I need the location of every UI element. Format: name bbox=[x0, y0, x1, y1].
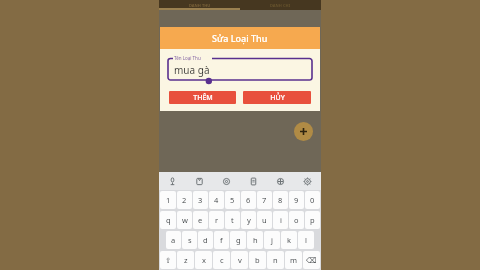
button[interactable]: q bbox=[160, 211, 176, 229]
staticText: 5 bbox=[230, 195, 235, 205]
button[interactable]: Keyboard tool 1 bbox=[159, 172, 186, 190]
button[interactable]: 6 bbox=[241, 191, 256, 209]
button[interactable]: Keyboard tool 2 bbox=[186, 172, 213, 190]
button[interactable]: j bbox=[264, 231, 280, 249]
staticText: Tên Loại Thu bbox=[174, 55, 201, 61]
button[interactable]: b bbox=[249, 251, 266, 269]
staticText: n bbox=[273, 255, 278, 265]
staticText: h bbox=[253, 235, 258, 245]
button[interactable]: DANH THU bbox=[159, 0, 240, 10]
button[interactable]: x bbox=[195, 251, 212, 269]
button[interactable]: 2 bbox=[177, 191, 192, 209]
button[interactable]: h bbox=[247, 231, 263, 249]
staticText: ⇧ bbox=[165, 256, 172, 265]
button[interactable]: 4 bbox=[209, 191, 224, 209]
staticText: 9 bbox=[294, 195, 299, 205]
button[interactable]: 9 bbox=[289, 191, 304, 209]
staticText: s bbox=[188, 235, 192, 245]
button[interactable]: Keyboard tool 5 bbox=[267, 172, 294, 190]
staticText: Sửa Loại Thu bbox=[212, 32, 268, 44]
button[interactable]: a bbox=[166, 231, 181, 249]
staticText: u bbox=[262, 215, 267, 225]
staticText: d bbox=[203, 235, 208, 245]
button[interactable]: g bbox=[230, 231, 246, 249]
staticText: 7 bbox=[262, 195, 267, 205]
button[interactable]: Keyboard tool 3 bbox=[213, 172, 240, 190]
staticText: 3 bbox=[198, 195, 203, 205]
staticText: 8 bbox=[278, 195, 283, 205]
staticText: DANH CHI bbox=[270, 3, 291, 8]
staticText: o bbox=[294, 215, 299, 225]
button[interactable]: r bbox=[209, 211, 224, 229]
button[interactable]: l bbox=[298, 231, 314, 249]
staticText: c bbox=[220, 255, 224, 265]
staticText: v bbox=[238, 255, 242, 265]
button[interactable]: ⇧ bbox=[160, 251, 176, 269]
button[interactable]: 8 bbox=[273, 191, 288, 209]
button[interactable]: Add bbox=[294, 122, 313, 141]
button[interactable]: z bbox=[177, 251, 194, 269]
button[interactable]: e bbox=[193, 211, 208, 229]
button[interactable]: 7 bbox=[257, 191, 272, 209]
button[interactable]: i bbox=[273, 211, 288, 229]
button[interactable]: Keyboard tool 4 bbox=[240, 172, 267, 190]
button[interactable]: k bbox=[281, 231, 297, 249]
staticText: b bbox=[255, 255, 260, 265]
button[interactable]: t bbox=[225, 211, 240, 229]
staticText: 6 bbox=[246, 195, 251, 205]
button[interactable]: Keyboard tool 6 bbox=[294, 172, 321, 190]
staticText: k bbox=[287, 235, 292, 245]
button[interactable]: 1 bbox=[160, 191, 176, 209]
staticText: p bbox=[310, 215, 315, 225]
button[interactable]: DANH CHI bbox=[240, 0, 321, 10]
staticText: z bbox=[184, 255, 188, 265]
staticText: 2 bbox=[182, 195, 187, 205]
button[interactable]: 3 bbox=[193, 191, 208, 209]
button[interactable]: THÊM bbox=[169, 91, 236, 104]
button[interactable]: s bbox=[182, 231, 197, 249]
button[interactable]: c bbox=[213, 251, 230, 269]
button[interactable]: ⌫ bbox=[303, 251, 320, 269]
staticText: t bbox=[231, 215, 234, 225]
button[interactable]: d bbox=[198, 231, 213, 249]
button[interactable]: y bbox=[241, 211, 256, 229]
staticText: l bbox=[305, 235, 307, 245]
staticText: 0 bbox=[310, 195, 315, 205]
button[interactable]: w bbox=[177, 211, 192, 229]
button[interactable]: n bbox=[267, 251, 284, 269]
staticText: m bbox=[290, 255, 298, 265]
staticText: g bbox=[236, 235, 241, 245]
staticText: 4 bbox=[214, 195, 219, 205]
button[interactable]: v bbox=[231, 251, 248, 269]
staticText: DANH THU bbox=[189, 3, 211, 8]
button[interactable]: m bbox=[285, 251, 302, 269]
button[interactable]: HỦY bbox=[243, 91, 311, 104]
button[interactable]: f bbox=[214, 231, 229, 249]
button[interactable]: 0 bbox=[305, 191, 320, 209]
button[interactable]: u bbox=[257, 211, 272, 229]
staticText: x bbox=[202, 255, 206, 265]
staticText: HỦY bbox=[270, 93, 285, 103]
staticText: 1 bbox=[166, 195, 171, 205]
staticText: j bbox=[271, 235, 273, 245]
staticText: w bbox=[182, 215, 188, 225]
staticText: i bbox=[280, 215, 282, 225]
staticText: mua gà bbox=[174, 63, 210, 77]
staticText: r bbox=[215, 215, 219, 225]
button[interactable]: 5 bbox=[225, 191, 240, 209]
staticText: y bbox=[247, 215, 251, 225]
button[interactable]: p bbox=[305, 211, 320, 229]
staticText: THÊM bbox=[193, 93, 213, 103]
staticText: q bbox=[166, 215, 171, 225]
staticText: e bbox=[198, 215, 203, 225]
staticText: a bbox=[171, 235, 176, 245]
staticText: ⌫ bbox=[306, 256, 317, 265]
staticText: f bbox=[220, 235, 223, 245]
button[interactable]: o bbox=[289, 211, 304, 229]
